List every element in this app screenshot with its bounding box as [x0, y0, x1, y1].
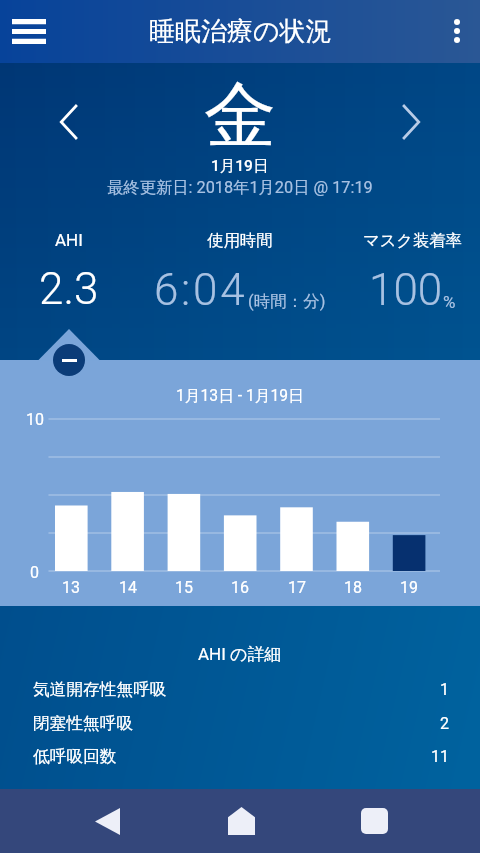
staticText: 11 — [431, 747, 449, 766]
button[interactable]: Menu — [4, 6, 54, 56]
button[interactable]: 閉塞性無呼吸 — [0, 708, 480, 738]
staticText: 13 — [62, 578, 80, 597]
staticText: 19 — [400, 578, 418, 597]
staticText: マスク装着率 — [363, 230, 462, 251]
button[interactable]: Previous day — [45, 99, 91, 145]
staticText: 1 — [440, 680, 449, 699]
staticText: 10 — [26, 410, 44, 429]
staticText: 2.3 — [39, 263, 99, 315]
button[interactable]: Back — [83, 797, 131, 845]
staticText: 1月13日 - 1月19日 — [176, 386, 304, 406]
button[interactable]: Next day — [389, 99, 435, 145]
staticText: 金 — [204, 71, 276, 162]
staticText: 閉塞性無呼吸 — [33, 713, 134, 734]
staticText: 15 — [175, 578, 193, 597]
staticText: 使用時間 — [207, 230, 273, 251]
staticText: % — [443, 292, 456, 312]
staticText: 睡眠治療の状況 — [149, 15, 332, 48]
staticText: 0 — [30, 563, 39, 582]
staticText: (時間：分) — [248, 291, 326, 312]
staticText: 2 — [440, 714, 449, 733]
button[interactable]: Recents — [350, 797, 398, 845]
button[interactable]: Home — [217, 797, 265, 845]
staticText: 気道開存性無呼吸 — [33, 679, 167, 700]
staticText: 最終更新日: 2018年1月20日 @ 17:19 — [107, 177, 373, 198]
staticText: 1月19日 — [211, 156, 269, 176]
staticText: 低呼吸回数 — [33, 746, 117, 767]
button[interactable]: Collapse — [53, 344, 85, 376]
staticText: 100 — [369, 264, 443, 316]
staticText: 17 — [288, 578, 306, 597]
staticText: 14 — [119, 578, 137, 597]
staticText: AHI の詳細 — [198, 644, 282, 665]
staticText: 6:04 — [154, 264, 248, 316]
button[interactable]: More options — [435, 9, 479, 53]
staticText: 18 — [344, 578, 362, 597]
staticText: AHI — [55, 230, 83, 250]
button[interactable]: 低呼吸回数 — [0, 741, 480, 771]
button[interactable]: 気道開存性無呼吸 — [0, 674, 480, 704]
staticText: 16 — [231, 578, 249, 597]
